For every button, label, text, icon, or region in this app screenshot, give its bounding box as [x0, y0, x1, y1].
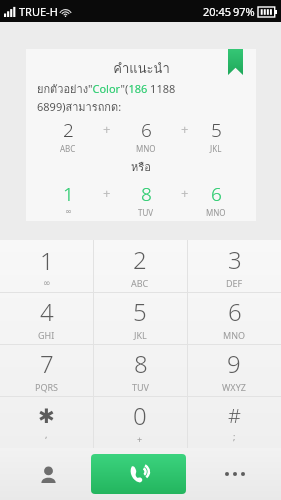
staticText: 6899)สามารถกด: — [37, 98, 122, 115]
staticText: ✱ — [38, 404, 55, 427]
staticText: GHI — [38, 329, 55, 341]
staticText: 4 — [40, 295, 54, 328]
staticText: 1 — [40, 244, 54, 277]
staticText: DEF — [226, 277, 243, 289]
staticText: + — [137, 433, 143, 445]
staticText: + — [181, 184, 189, 202]
staticText: PQRS — [35, 381, 59, 393]
staticText: MNO — [136, 143, 156, 154]
staticText: 1 — [63, 181, 74, 207]
button[interactable]: 5 — [93, 292, 187, 344]
staticText: คำแนะนำ — [113, 58, 170, 79]
staticText: 6 — [141, 117, 152, 143]
staticText: 6 — [211, 181, 222, 207]
staticText: 97% — [233, 4, 255, 19]
button[interactable]: Call — [91, 454, 186, 494]
staticText: ABC — [131, 277, 149, 289]
staticText: TUV — [132, 381, 149, 393]
staticText: 2 — [133, 243, 147, 276]
staticText: TRUE-H — [19, 4, 58, 19]
staticText: 8 — [134, 347, 148, 380]
staticText: ∞ — [43, 278, 51, 288]
button[interactable]: 2 — [93, 240, 187, 292]
staticText: JKL — [210, 143, 222, 154]
staticText: 3 — [228, 243, 242, 276]
staticText: ; — [233, 430, 236, 442]
staticText: + — [103, 184, 111, 202]
staticText: 8 — [141, 181, 152, 207]
staticText: , — [45, 428, 48, 440]
button[interactable]: คำแนะนำ — [26, 49, 256, 221]
staticText: TUV — [138, 207, 154, 218]
staticText: 0 — [133, 399, 147, 432]
button[interactable]: 9 — [187, 344, 281, 396]
button[interactable]: 7 — [0, 344, 93, 396]
button[interactable]: 0 — [93, 396, 187, 448]
staticText: ยกตัวอย่าง"Color"(186 1188 — [37, 80, 176, 97]
staticText: 20:45 — [203, 4, 232, 19]
button[interactable]: 8 — [93, 344, 187, 396]
button[interactable]: Contacts — [30, 456, 66, 492]
staticText: + — [103, 120, 111, 138]
staticText: 9 — [227, 347, 241, 380]
button[interactable]: ✱ — [0, 396, 93, 448]
staticText: + — [181, 120, 189, 138]
staticText: WXYZ — [222, 381, 246, 393]
button[interactable]: More options — [217, 456, 253, 492]
staticText: 5 — [133, 295, 147, 328]
staticText: 6 — [228, 295, 242, 328]
staticText: MNO — [223, 329, 246, 341]
staticText: JKL — [134, 329, 147, 341]
button[interactable]: 4 — [0, 292, 93, 344]
staticText: ∞ — [65, 207, 72, 216]
staticText: MNO — [206, 207, 226, 218]
button[interactable]: # — [187, 396, 281, 448]
staticText: 7 — [40, 347, 54, 380]
staticText: 2 — [63, 117, 74, 143]
staticText: # — [228, 402, 241, 429]
staticText: ABC — [60, 143, 76, 154]
staticText: หรือ — [26, 158, 256, 175]
other: Bookmark — [228, 49, 243, 75]
button[interactable]: 1 — [0, 240, 93, 292]
button[interactable]: 3 — [187, 240, 281, 292]
staticText: 5 — [211, 117, 222, 143]
button[interactable]: 6 — [187, 292, 281, 344]
